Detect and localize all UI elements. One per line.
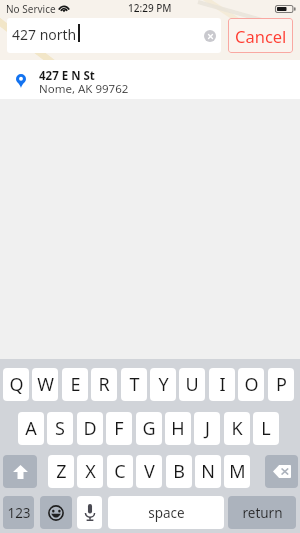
staticText: B (173, 459, 185, 484)
staticText: S (55, 416, 65, 441)
button[interactable]: Shift (3, 455, 37, 488)
button[interactable]: P (268, 368, 294, 401)
button[interactable]: W (32, 368, 58, 401)
button[interactable]: Dictation (77, 496, 102, 529)
button[interactable]: V (136, 455, 162, 488)
staticText: 123 (7, 504, 31, 522)
button[interactable]: M (224, 455, 250, 488)
button[interactable]: 427 north (7, 18, 221, 53)
button[interactable]: Z (48, 455, 74, 488)
staticText: H (171, 416, 185, 441)
staticText: W (37, 372, 54, 397)
staticText: Cancel (235, 25, 287, 47)
staticText: D (83, 416, 97, 441)
staticText: U (185, 372, 199, 397)
staticText: 12:29 PM (128, 1, 172, 15)
staticText: 427 north (12, 25, 77, 44)
button[interactable]: Y (150, 368, 176, 401)
staticText: T (129, 372, 140, 397)
staticText: X (85, 459, 96, 484)
button[interactable]: return (228, 496, 296, 529)
staticText: A (25, 416, 37, 441)
staticText: J (205, 416, 210, 441)
staticText: P (276, 372, 287, 397)
staticText: I (219, 372, 226, 397)
button[interactable]: J (194, 412, 220, 445)
button[interactable]: B (166, 455, 192, 488)
staticText: Y (158, 372, 169, 397)
button[interactable]: 123 (3, 496, 34, 529)
staticText: N (201, 459, 215, 484)
button[interactable]: U (179, 368, 205, 401)
button[interactable]: C (107, 455, 133, 488)
staticText: L (261, 416, 271, 441)
staticText: C (114, 459, 126, 484)
button[interactable]: D (77, 412, 103, 445)
staticText: space (148, 504, 185, 522)
button[interactable]: S (47, 412, 73, 445)
staticText: E (70, 372, 81, 397)
staticText: R (98, 372, 110, 397)
button[interactable]: Clear text (204, 30, 216, 42)
button[interactable]: E (62, 368, 88, 401)
staticText: F (114, 416, 124, 441)
button[interactable]: Backspace (265, 455, 298, 488)
button[interactable]: L (253, 412, 279, 445)
button[interactable]: T (121, 368, 147, 401)
staticText: Nome, AK 99762 (39, 81, 129, 97)
staticText: return (242, 504, 283, 522)
staticText: K (231, 416, 243, 441)
staticText: No Service (6, 2, 56, 16)
button[interactable]: I (209, 368, 235, 401)
button[interactable]: Cancel (228, 18, 293, 53)
button[interactable]: Emoji (40, 496, 72, 529)
staticText: M (229, 459, 246, 484)
staticText: 427 E N St (39, 68, 95, 84)
button[interactable]: O (238, 368, 264, 401)
button[interactable]: G (136, 412, 162, 445)
staticText: O (244, 372, 259, 397)
button[interactable]: X (77, 455, 103, 488)
button[interactable]: H (165, 412, 191, 445)
staticText: Z (56, 459, 67, 484)
staticText: G (142, 416, 156, 441)
staticText: Q (9, 372, 24, 397)
button[interactable]: K (224, 412, 250, 445)
button[interactable]: Q (3, 368, 29, 401)
button[interactable]: 427 E N St (0, 60, 300, 99)
button[interactable]: N (195, 455, 221, 488)
button[interactable]: R (91, 368, 117, 401)
button[interactable]: F (106, 412, 132, 445)
button[interactable]: A (18, 412, 44, 445)
button[interactable]: space (108, 496, 224, 529)
staticText: V (144, 459, 155, 484)
